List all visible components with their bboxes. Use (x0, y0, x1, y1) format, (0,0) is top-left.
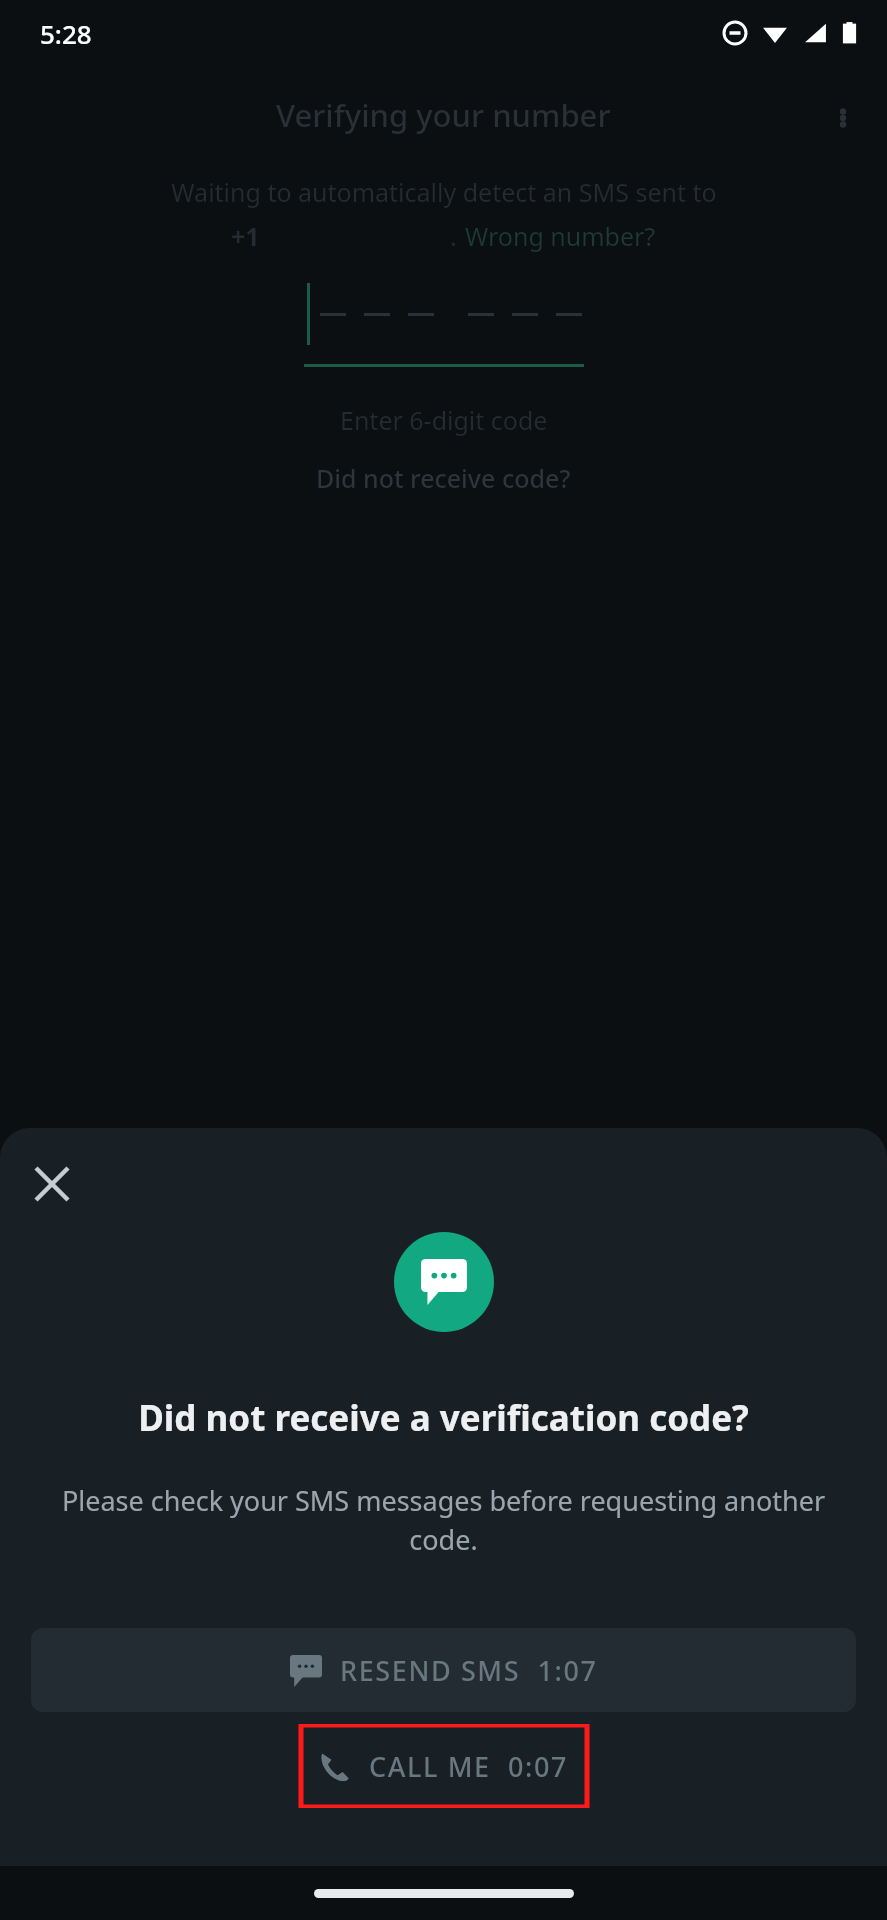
button[interactable]: CALL ME 0:07 (31, 1724, 856, 1808)
staticText: Enter 6-digit code (340, 403, 548, 437)
staticText: . (450, 219, 457, 253)
staticText: Waiting to automatically detect an SMS s… (171, 175, 717, 209)
button[interactable]: Did not receive code? (316, 461, 571, 495)
staticText: 5:28 (40, 16, 92, 51)
button[interactable]: More options (821, 96, 865, 140)
staticText: +1 (231, 219, 260, 253)
staticText: Verifying your number (276, 94, 611, 136)
staticText: CALL ME 0:07 (369, 1748, 569, 1785)
button[interactable]: RESEND SMS 1:07 (31, 1628, 856, 1712)
staticText: Did not receive a verification code? (18, 1394, 869, 1442)
staticText: RESEND SMS 1:07 (340, 1652, 598, 1689)
staticText: Please check your SMS messages before re… (32, 1482, 855, 1558)
button[interactable]: Wrong number? (465, 219, 656, 253)
button[interactable]: Close (22, 1154, 82, 1214)
